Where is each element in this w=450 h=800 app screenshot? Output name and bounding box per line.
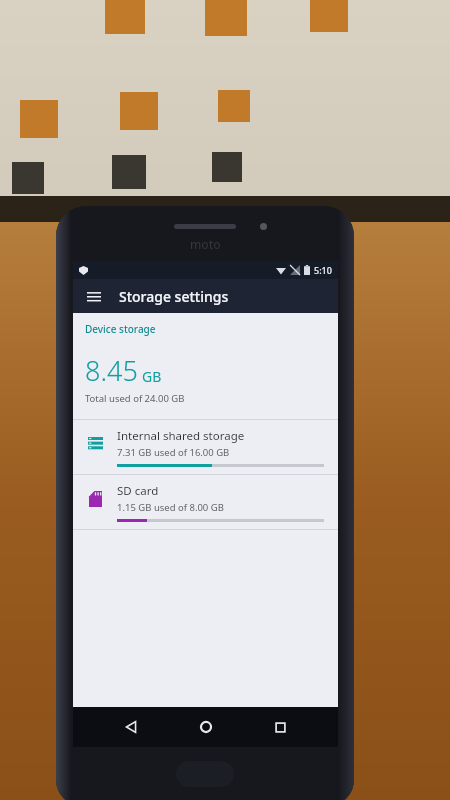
staticText: GB <box>142 367 162 386</box>
button[interactable]: Open navigation menu <box>81 283 107 309</box>
staticText: SD card <box>117 483 159 499</box>
staticText: 7.31 GB used of 16.00 GB <box>117 446 230 459</box>
button[interactable]: Recent apps <box>263 710 297 744</box>
staticText: moto <box>190 236 221 252</box>
staticText: 5:10 <box>314 264 332 276</box>
staticText: Internal shared storage <box>117 428 245 444</box>
button[interactable]: Internal shared storage <box>73 420 338 474</box>
button[interactable]: SD card <box>73 475 338 529</box>
staticText: 1.15 GB used of 8.00 GB <box>117 501 224 514</box>
staticText: Device storage <box>85 322 156 336</box>
staticText: Total used of 24.00 GB <box>85 392 185 405</box>
staticText: Storage settings <box>119 287 229 306</box>
button[interactable]: Home <box>189 710 223 744</box>
button[interactable]: Back <box>114 710 148 744</box>
staticText: 8.45 <box>85 352 138 389</box>
